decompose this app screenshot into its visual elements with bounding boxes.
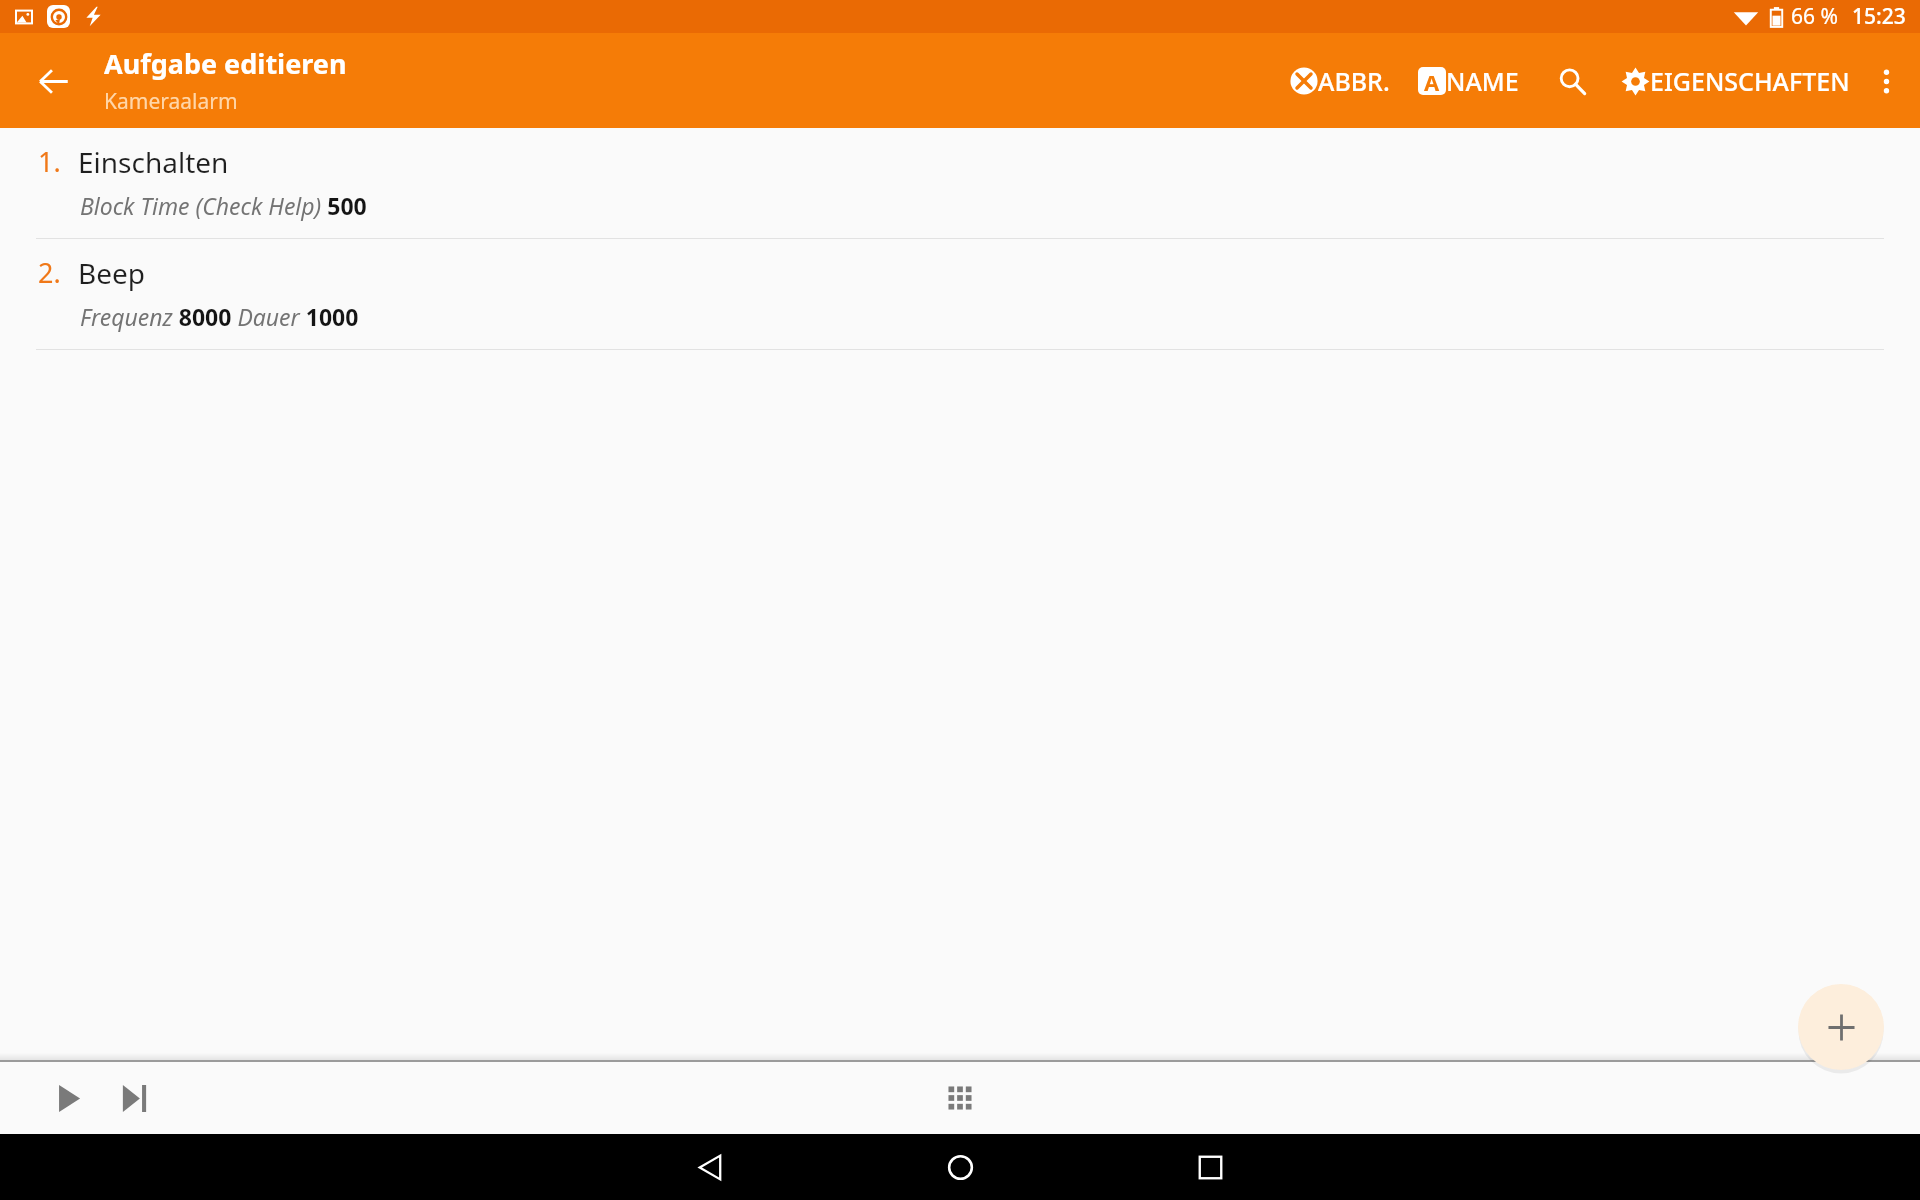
button[interactable]: Weitere Optionen: [1858, 53, 1914, 109]
staticText: 66 %: [1791, 2, 1838, 31]
button[interactable]: EIGENSCHAFTEN: [1613, 49, 1858, 113]
staticText: 2.: [38, 254, 61, 291]
button[interactable]: Startseite: [928, 1135, 992, 1199]
staticText: 15:23: [1852, 2, 1906, 31]
button[interactable]: Zurück: [678, 1135, 742, 1199]
staticText: Einschalten: [78, 143, 229, 181]
staticText: 1.: [38, 143, 61, 180]
button[interactable]: Ausführen: [40, 1070, 96, 1126]
staticText: Block Time (Check Help) 500: [80, 190, 367, 221]
staticText: Kameraalarm: [104, 87, 238, 116]
button[interactable]: 2.: [0, 239, 1920, 350]
staticText: A: [1424, 67, 1440, 95]
button[interactable]: ABBR.: [1282, 49, 1398, 113]
button[interactable]: Nächster Schritt: [106, 1070, 162, 1126]
staticText: ABBR.: [1318, 64, 1390, 98]
staticText: EIGENSCHAFTEN: [1650, 64, 1850, 98]
staticText: Frequenz 8000 Dauer 1000: [80, 301, 359, 332]
button[interactable]: Suche: [1543, 52, 1601, 110]
button[interactable]: Zurück: [21, 49, 85, 113]
staticText: Beep: [78, 254, 146, 292]
staticText: Aufgabe editieren: [104, 45, 347, 82]
button[interactable]: Letzte Apps: [1178, 1135, 1242, 1199]
button[interactable]: A: [1410, 49, 1527, 113]
staticText: NAME: [1446, 64, 1519, 98]
button[interactable]: Raster: [930, 1068, 990, 1128]
button[interactable]: Hinzufügen: [1798, 984, 1884, 1070]
button[interactable]: 1.: [0, 128, 1920, 239]
